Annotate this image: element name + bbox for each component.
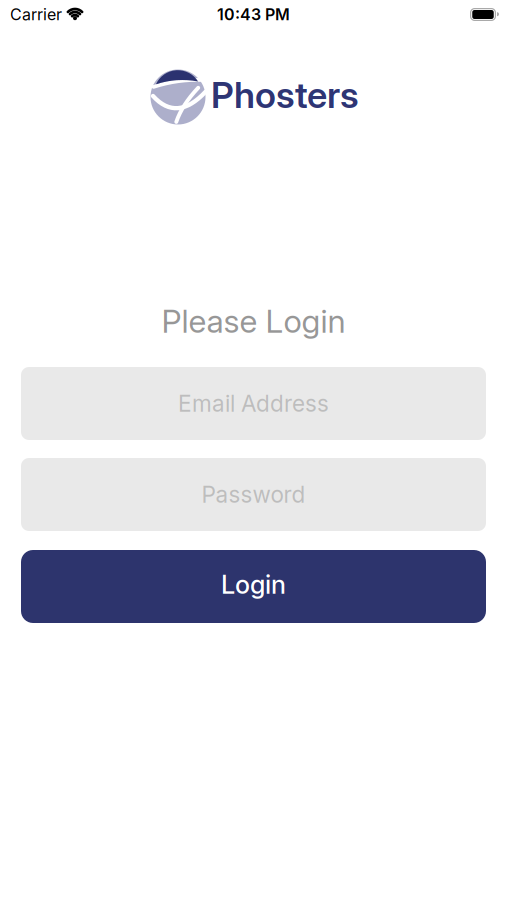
button[interactable]: Email Address bbox=[21, 367, 486, 440]
staticText: Carrier bbox=[10, 5, 62, 24]
staticText: Phosters bbox=[211, 74, 359, 116]
staticText: Login bbox=[221, 570, 286, 599]
staticText: Email Address bbox=[178, 390, 329, 417]
staticText: Please Login bbox=[161, 302, 345, 340]
button[interactable]: Password bbox=[21, 458, 486, 531]
staticText: Password bbox=[201, 481, 305, 508]
staticText: 10:43 PM bbox=[217, 5, 290, 24]
button[interactable]: Login bbox=[21, 550, 486, 623]
